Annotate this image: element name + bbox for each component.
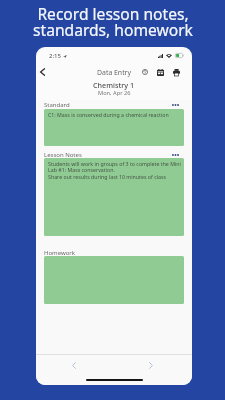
button[interactable]: Students will work in groups of 3 to com… [44,158,184,236]
button[interactable]: Print [172,68,180,76]
staticText: Standard [44,101,70,109]
button[interactable]: More options [170,100,181,109]
staticText: Homework [44,249,75,257]
button[interactable]: Help [141,68,149,76]
staticText: Students will work in groups of 3 to com… [48,160,181,181]
staticText: Mon, Apr 26 [98,89,131,97]
button[interactable]: C1: Mass is conserved during a chemical … [44,109,184,146]
button[interactable]: Calendar [156,68,164,76]
staticText: C1: Mass is conserved during a chemical … [48,111,169,118]
staticText: Record lesson notes, standards, homework [33,3,193,41]
staticText: Chemistry 1 [93,80,135,90]
staticText: Data Entry [97,68,131,77]
staticText: 2:15 [49,52,61,60]
button[interactable]: More options [170,150,181,159]
staticText: Lesson Notes [44,151,82,159]
button[interactable]: Next [144,358,158,372]
button[interactable]: Previous [67,358,81,372]
button[interactable]: Back [36,65,49,79]
